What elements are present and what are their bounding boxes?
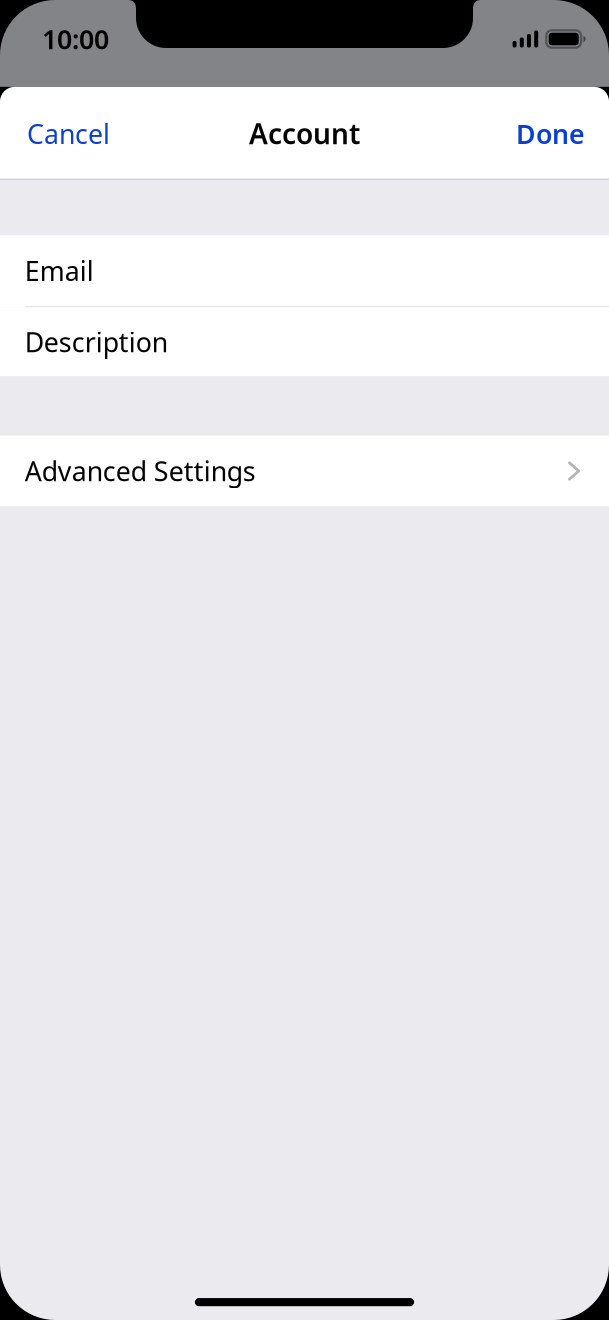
- staticText: 10:00: [42, 21, 109, 57]
- staticText: Description: [25, 324, 168, 360]
- staticText: Account: [249, 115, 360, 152]
- button[interactable]: Description: [0, 307, 609, 376]
- staticText: Cancel: [27, 116, 110, 151]
- staticText: Advanced Settings: [25, 453, 256, 489]
- button[interactable]: Email: [0, 235, 609, 307]
- staticText: Done: [516, 116, 585, 151]
- button[interactable]: Cancel: [25, 108, 112, 159]
- button[interactable]: Done: [514, 108, 587, 159]
- staticText: Email: [25, 253, 94, 288]
- button[interactable]: Advanced Settings: [0, 436, 609, 506]
